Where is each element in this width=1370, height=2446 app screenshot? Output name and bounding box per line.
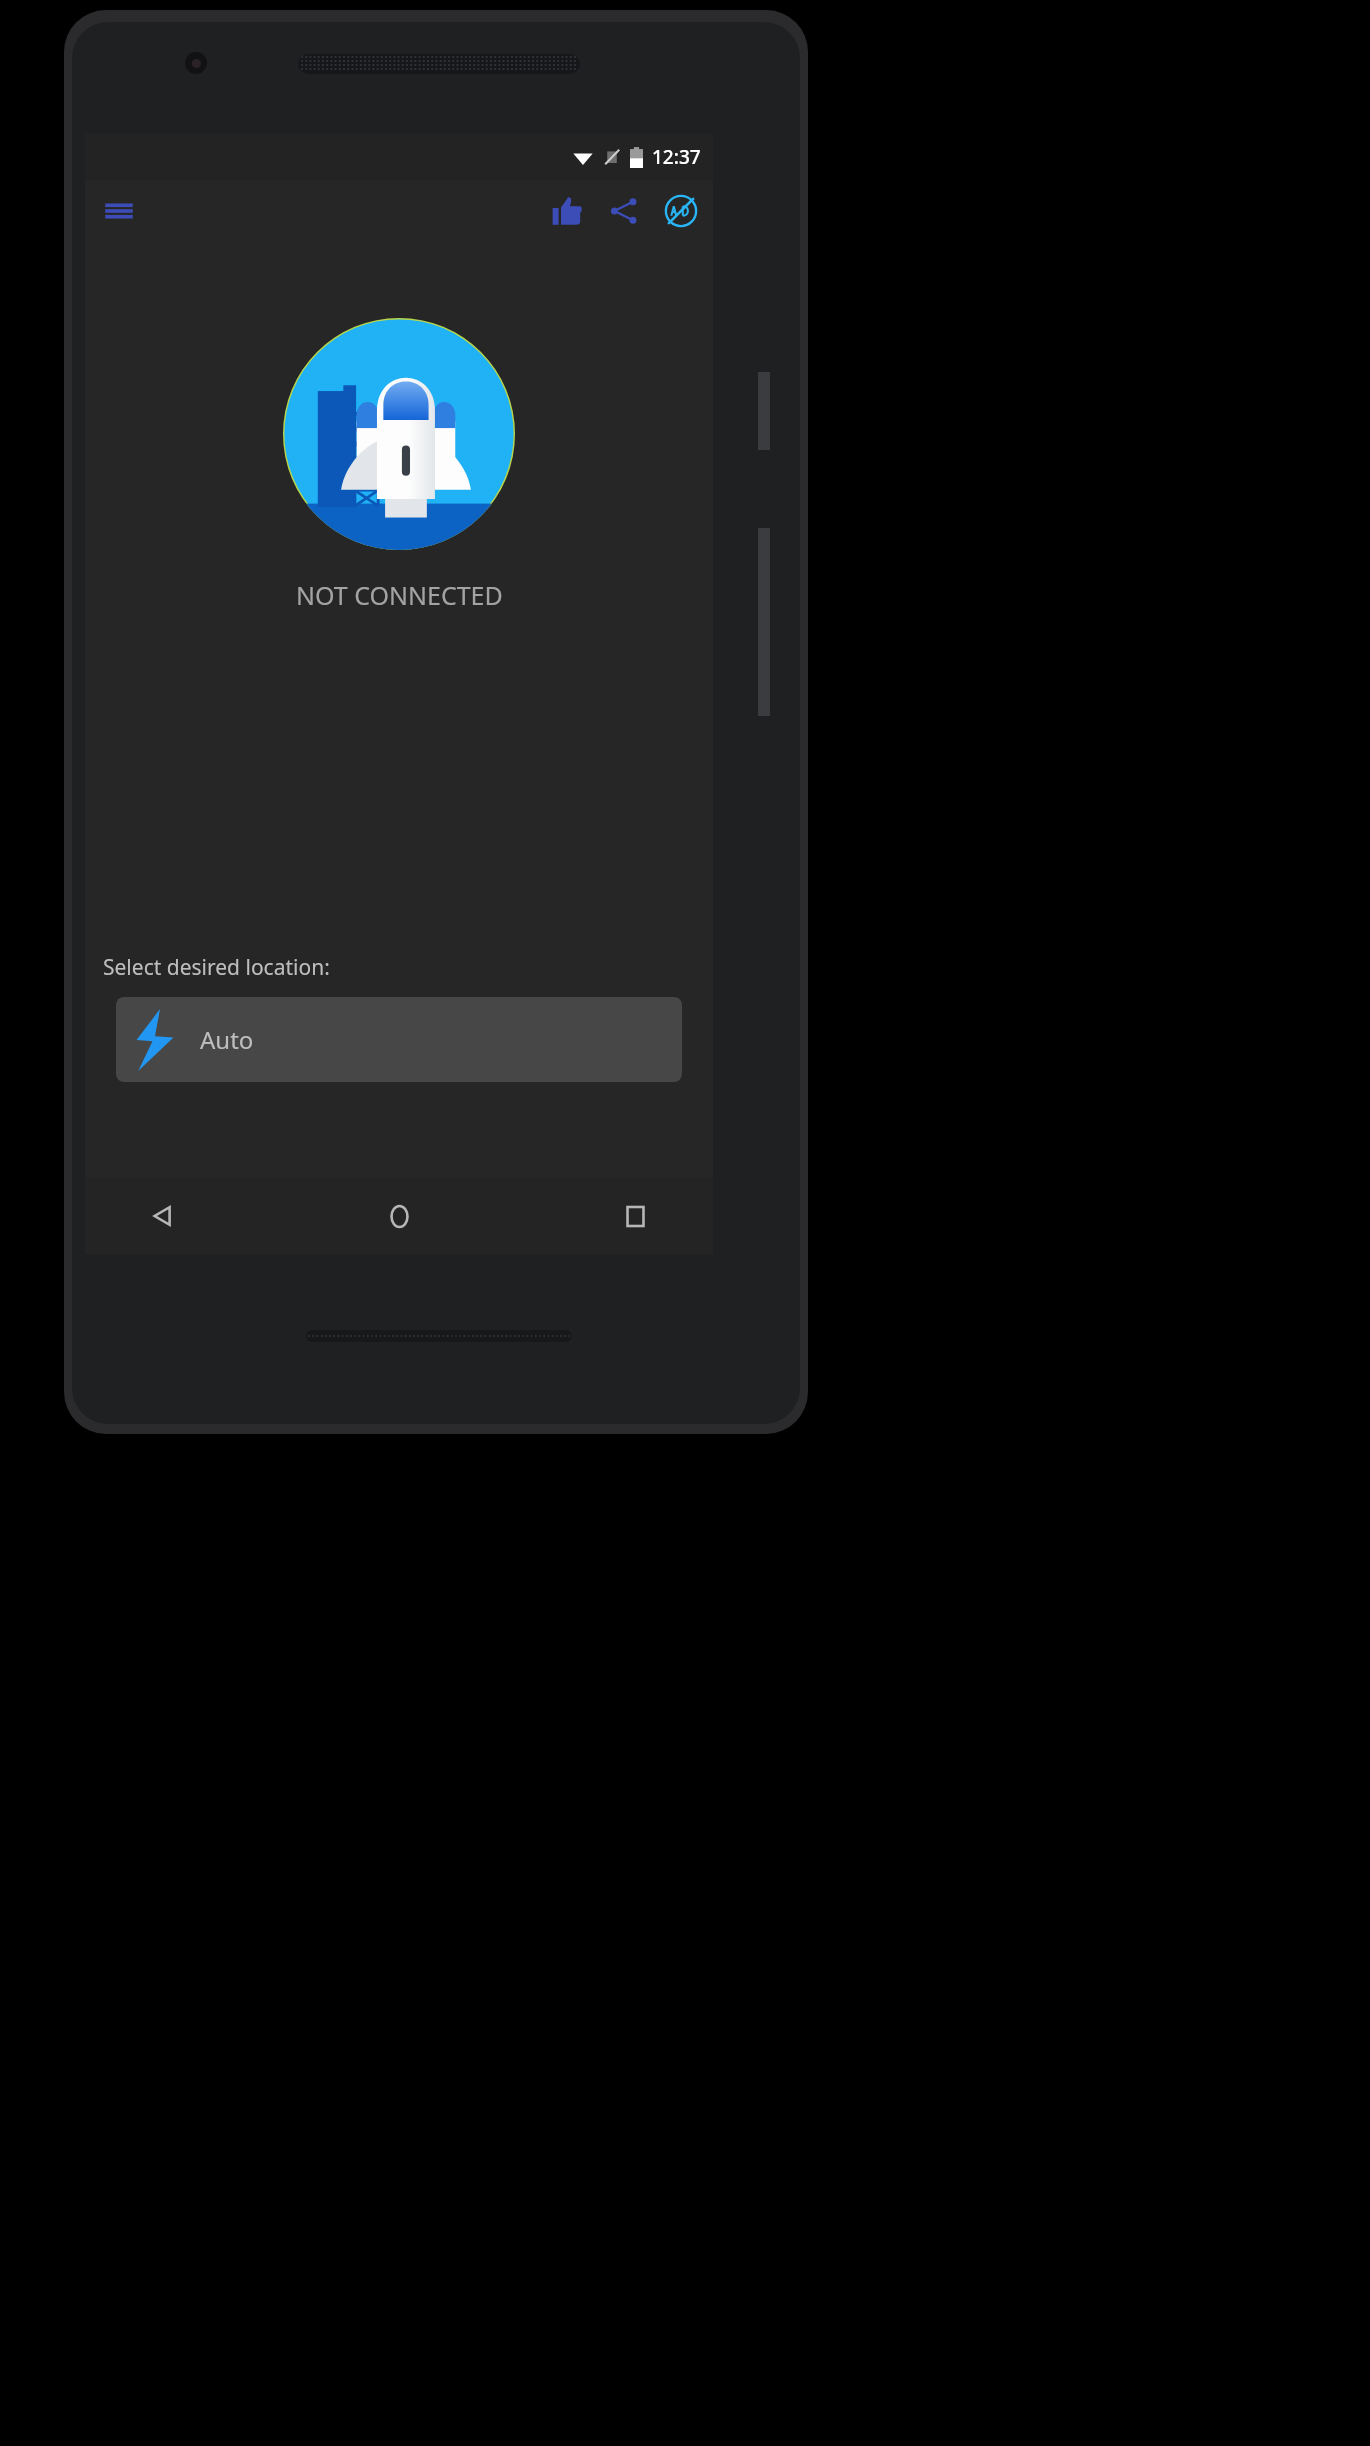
button[interactable]: Open navigation menu xyxy=(95,187,143,235)
staticText: Auto xyxy=(200,1023,254,1056)
staticText: Select desired location: xyxy=(103,953,330,982)
button[interactable]: Share xyxy=(600,187,648,235)
button[interactable]: Remove ads xyxy=(657,187,705,235)
button[interactable]: Home xyxy=(373,1190,425,1242)
staticText: 12:37 xyxy=(652,144,701,170)
button[interactable]: Rate this app xyxy=(543,187,591,235)
staticText: NOT CONNECTED xyxy=(296,578,503,612)
button[interactable]: Auto xyxy=(116,997,682,1082)
button[interactable]: Back xyxy=(137,1190,189,1242)
button[interactable]: Recent apps xyxy=(609,1190,661,1242)
